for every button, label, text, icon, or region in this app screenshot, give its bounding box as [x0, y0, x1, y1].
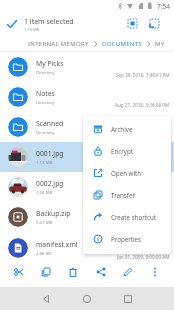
button[interactable] — [147, 264, 163, 280]
staticText: Notes — [36, 89, 55, 98]
staticText: Sep 29, 2016, 7:49:41 PM — [116, 72, 170, 78]
staticText: 2.88 KB — [36, 250, 52, 256]
staticText: Transfer — [111, 191, 135, 199]
button[interactable]: Open with — [83, 162, 171, 184]
button[interactable] — [38, 264, 54, 280]
button[interactable]: Properties — [83, 228, 171, 250]
button[interactable] — [11, 264, 27, 280]
button[interactable]: Archive — [83, 118, 171, 140]
button[interactable]: Create shortcut — [83, 206, 171, 228]
button[interactable] — [41, 294, 51, 304]
button[interactable]: DOCUMENTS — [102, 40, 142, 48]
staticText: Directory — [36, 129, 55, 135]
staticText: Directory — [36, 69, 55, 75]
button[interactable] — [65, 264, 81, 280]
button[interactable]: Scanned — [0, 112, 174, 142]
button[interactable] — [149, 18, 161, 30]
staticText: 5.61 MB — [36, 219, 53, 225]
button[interactable]: Transfer — [83, 184, 171, 206]
staticText: 1.13 MB — [36, 159, 53, 165]
staticText: 1.15 MB — [24, 27, 40, 32]
staticText: 7:54 — [157, 2, 170, 11]
staticText: Encrypt — [111, 147, 133, 155]
button[interactable]: Backup.zip — [0, 202, 174, 232]
button[interactable]: 0002.jpg — [0, 172, 174, 202]
staticText: Create shortcut — [111, 213, 156, 221]
button[interactable]: Notes — [0, 82, 174, 112]
button[interactable]: manifest.xml — [0, 232, 174, 264]
button[interactable] — [127, 18, 139, 30]
staticText: 0002.jpg — [36, 179, 64, 188]
staticText: Scanned — [36, 119, 64, 128]
button[interactable] — [93, 264, 109, 280]
staticText: manifest.xml — [36, 240, 78, 249]
staticText: My Picks — [36, 59, 64, 68]
button[interactable]: INTERNAL MEMORY — [28, 40, 89, 48]
staticText: Directory — [36, 99, 55, 105]
staticText: Properties — [111, 235, 142, 243]
staticText: Backup.zip — [36, 209, 71, 218]
button[interactable] — [120, 264, 136, 280]
button[interactable]: Encrypt — [83, 140, 171, 162]
staticText: Archive — [111, 125, 133, 133]
staticText: 1 item selected — [24, 17, 74, 27]
button[interactable] — [82, 294, 92, 304]
button[interactable]: MY FILES — [155, 40, 174, 48]
button[interactable] — [123, 294, 133, 304]
staticText: 0001.jpg — [36, 149, 64, 158]
button[interactable] — [6, 18, 18, 30]
staticText: 1.28 MB — [36, 189, 53, 195]
button[interactable]: 0001.jpg — [0, 142, 174, 172]
staticText: Open with — [111, 169, 142, 177]
button[interactable]: My Picks — [0, 52, 174, 82]
staticText: Jan 01, 2009, 9:00:00 AM — [117, 254, 170, 260]
staticText: Aug 27, 2018, 3:36:08 PM — [115, 102, 170, 108]
